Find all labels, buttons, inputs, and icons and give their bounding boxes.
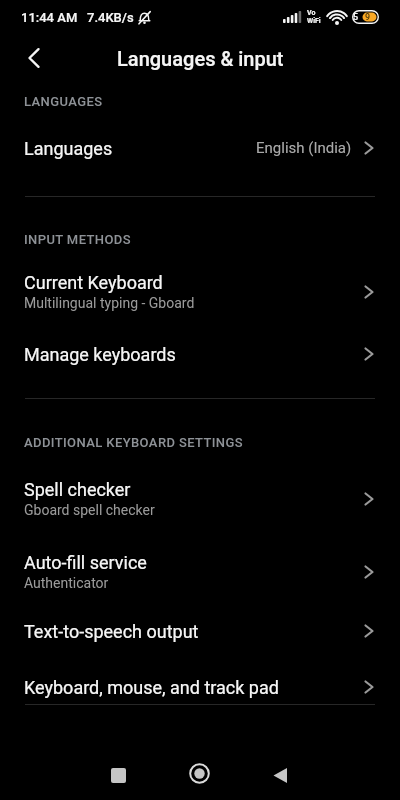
button[interactable]: Text-to-speech output: [0, 607, 400, 655]
staticText: LANGUAGES: [24, 94, 103, 109]
button[interactable]: [184, 758, 214, 788]
staticText: 11:44 AM: [21, 10, 78, 25]
staticText: English (India): [256, 139, 352, 157]
staticText: Multilingual typing - Gboard: [24, 295, 195, 311]
staticText: Auto-fill service: [24, 552, 147, 573]
staticText: ADDITIONAL KEYBOARD SETTINGS: [24, 435, 243, 450]
staticText: Text-to-speech output: [24, 621, 199, 642]
button[interactable]: Keyboard, mouse, and track pad: [0, 663, 400, 711]
staticText: INPUT METHODS: [24, 232, 131, 247]
staticText: WiFi: [307, 17, 321, 25]
staticText: Authenticator: [24, 575, 109, 591]
staticText: Spell checker: [24, 479, 131, 500]
button[interactable]: [265, 760, 295, 790]
button[interactable]: Manage keyboards: [0, 330, 400, 378]
button[interactable]: Languages: [0, 124, 400, 172]
button[interactable]: [103, 760, 133, 790]
button[interactable]: Auto-fill service: [0, 547, 400, 596]
button[interactable]: Current Keyboard: [0, 267, 400, 316]
staticText: Keyboard, mouse, and track pad: [24, 677, 279, 698]
staticText: 5: [353, 12, 359, 23]
staticText: Languages: [24, 138, 113, 159]
staticText: Manage keyboards: [24, 344, 176, 365]
staticText: Current Keyboard: [24, 272, 163, 293]
staticText: 9: [365, 12, 371, 23]
staticText: Vo: [307, 9, 316, 17]
button[interactable]: Spell checker: [0, 474, 400, 523]
staticText: Gboard spell checker: [24, 502, 155, 518]
staticText: Languages & input: [117, 47, 284, 70]
button[interactable]: [28, 48, 40, 68]
staticText: 7.4KB/s: [87, 10, 134, 25]
